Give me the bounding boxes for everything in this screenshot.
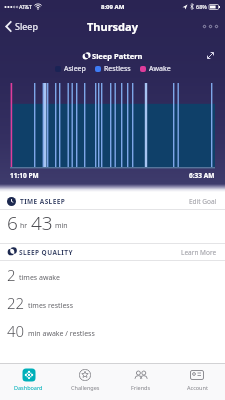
staticText: times awake [19,273,61,283]
staticText: TIME ASLEEP [20,197,66,206]
staticText: 6 [7,210,18,235]
staticText: Account [187,384,208,391]
staticText: 6:33 AM [189,171,215,180]
button[interactable]: Account [169,364,225,400]
staticText: Thursday [87,19,138,34]
button[interactable]: Sleep [5,20,38,32]
button[interactable]: 40 [7,317,225,345]
staticText: min [55,221,68,231]
staticText: SLEEP QUALITY [19,248,73,257]
staticText: Dashboard [14,384,43,391]
button[interactable]: 22 [7,289,225,317]
button[interactable]: Dashboard [0,364,57,400]
staticText: Sleep Pattern [92,51,143,61]
button[interactable]: 2 [7,261,225,289]
staticText: Friends [131,384,151,391]
button[interactable]: TIME ASLEEP [7,194,217,209]
button[interactable]: Challenges [57,364,113,400]
staticText: hr [20,221,28,231]
staticText: 40 [7,321,25,341]
staticText: 2 [7,265,16,285]
staticText: AT&T [19,3,32,10]
staticText: times restless [28,301,74,311]
staticText: 11:10 PM [10,171,39,180]
button[interactable]: Friends [113,364,169,400]
staticText: Restless [104,64,131,74]
staticText: Learn More [181,248,217,257]
staticText: 22 [7,293,25,313]
staticText: min awake / restless [28,329,95,339]
staticText: Edit Goal [189,197,217,206]
staticText: 68% [196,3,207,10]
button[interactable]: SLEEP QUALITY [7,244,217,260]
staticText: Awake [149,64,171,74]
button[interactable] [206,51,215,60]
staticText: 8:09 AM [101,3,125,11]
button[interactable] [203,25,218,28]
staticText: 43 [31,210,53,235]
staticText: Challenges [71,384,100,391]
staticText: Asleep [64,64,86,74]
staticText: Sleep [15,20,38,32]
